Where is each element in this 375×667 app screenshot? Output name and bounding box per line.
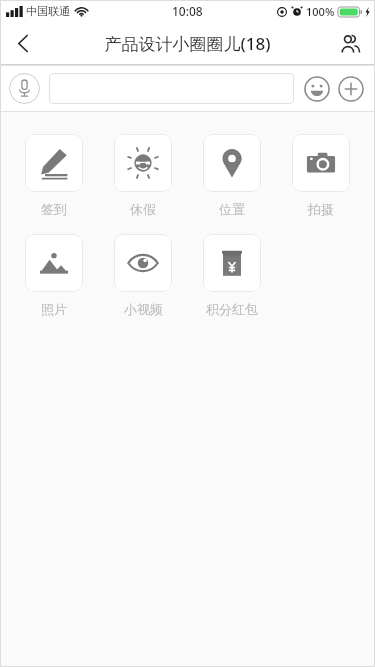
staticText: 100% (306, 4, 335, 19)
button[interactable]: 积分红包 (201, 234, 263, 317)
staticText: 小视频 (124, 301, 163, 317)
staticText: 产品设计小圈圈儿(18) (104, 32, 271, 55)
button[interactable]: Voice input (9, 73, 40, 104)
staticText: 休假 (130, 201, 156, 217)
staticText: 积分红包 (206, 301, 258, 317)
button[interactable]: More (336, 74, 366, 104)
button[interactable]: 拍摄 (290, 134, 352, 217)
staticText: 拍摄 (308, 201, 334, 217)
button[interactable] (49, 73, 294, 104)
button[interactable]: 小视频 (112, 234, 174, 317)
staticText: 10:08 (172, 3, 203, 19)
button[interactable]: Group members (327, 22, 375, 64)
button[interactable]: 签到 (23, 134, 85, 217)
button[interactable]: 休假 (112, 134, 174, 217)
staticText: 签到 (41, 201, 67, 217)
staticText: 中国联通 (26, 4, 70, 18)
staticText: 照片 (41, 301, 67, 317)
staticText: 位置 (219, 201, 245, 217)
button[interactable]: 位置 (201, 134, 263, 217)
button[interactable]: Emoji (303, 75, 331, 103)
button[interactable]: Back (0, 22, 46, 64)
button[interactable]: 照片 (23, 234, 85, 317)
